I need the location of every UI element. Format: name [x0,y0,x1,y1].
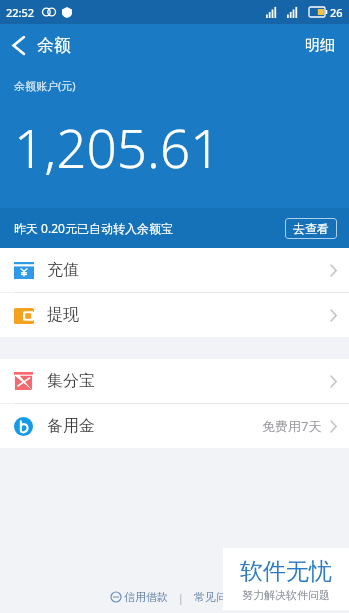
staticText: 信用借款 [124,590,168,604]
staticText: 1,205.61 [14,111,221,183]
staticText: | [172,590,190,605]
staticText: 充值 [47,260,79,280]
button[interactable]: 信用借款 [107,587,172,607]
staticText: 26 [330,5,343,20]
staticText: 提现 [47,305,79,325]
button[interactable]: 去查看 [285,218,337,239]
staticText: 余额账户(元) [14,78,76,93]
staticText: 22:52 [6,5,35,20]
button[interactable]: 充值 [0,248,349,292]
button[interactable]: 集分宝 [0,359,349,403]
staticText: 免费用7天 [262,417,322,435]
staticText: 努力解决软件问题 [242,588,330,602]
button[interactable]: 明细 [291,24,349,66]
button[interactable]: Back [0,24,79,66]
staticText: 昨天 0.20元已自动转入余额宝 [14,220,173,236]
staticText: 余额 [37,35,71,56]
staticText: 明细 [305,36,335,55]
button[interactable]: 昨天 0.20元已自动转入余额宝 [0,208,349,248]
staticText: 常见问题 [194,590,238,604]
staticText: 软件无忧 [240,557,332,586]
staticText: 集分宝 [47,371,95,391]
staticText: 备用金 [47,416,95,436]
button[interactable]: 常见问题 [190,587,242,607]
button[interactable]: 提现 [0,293,349,337]
button[interactable]: 备用金 [0,404,349,448]
staticText: 去查看 [293,221,329,236]
